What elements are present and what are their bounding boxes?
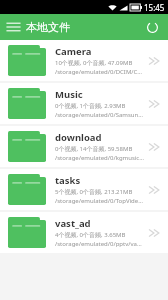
staticText: Music <box>55 88 83 101</box>
staticText: 0个视频, 14个音频, 59.58MB <box>55 145 133 153</box>
staticText: /storage/emulated/0/TopVideo/stor… <box>55 197 144 205</box>
staticText: /storage/emulated/0/pptv/vast_ad <box>55 240 144 248</box>
staticText: 本地文件 <box>26 20 70 34</box>
staticText: vast_ad <box>55 217 91 230</box>
button[interactable]: tasks <box>0 169 168 210</box>
button[interactable]: Menu <box>0 14 26 40</box>
staticText: /storage/emulated/0/Samsung/Music <box>55 111 144 119</box>
staticText: 15:45 <box>144 2 165 13</box>
button[interactable]: Camera <box>0 40 168 81</box>
button[interactable]: download <box>0 126 168 167</box>
staticText: 4个视频, 0个音频, 3.65MB <box>55 231 126 239</box>
staticText: download <box>55 131 102 144</box>
button[interactable]: Music <box>0 83 168 124</box>
staticText: /storage/emulated/0/kgmusic/down… <box>55 154 144 162</box>
button[interactable]: vast_ad <box>0 212 168 253</box>
staticText: 10个视频, 0个音频, 47.09MB <box>55 59 133 67</box>
staticText: 5个视频, 0个音频, 213.21MB <box>55 188 133 196</box>
staticText: /storage/emulated/0/DCIM/Camera <box>55 68 144 76</box>
staticText: Camera <box>55 45 92 58</box>
staticText: tasks <box>55 174 81 187</box>
staticText: 0个视频, 1个音频, 2.93MB <box>55 102 126 110</box>
button[interactable]: Refresh <box>139 14 165 40</box>
